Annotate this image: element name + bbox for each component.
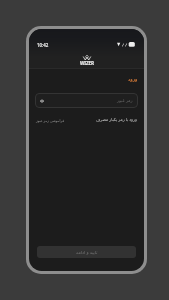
- other: Show password: [40, 99, 44, 103]
- staticText: تایید و ادامه: [76, 249, 98, 255]
- button[interactable]: تایید و ادامه: [37, 246, 136, 258]
- button[interactable]: ورود با رمز یکبار مصرف: [96, 117, 137, 123]
- staticText: 10:42: [37, 42, 49, 48]
- staticText: رمز عبور: [117, 98, 133, 104]
- button[interactable]: ورود: [128, 76, 138, 82]
- staticText: WIZER: [80, 60, 94, 66]
- button[interactable]: فراموشی رمز عبور: [36, 118, 65, 123]
- button[interactable]: Show password: [35, 93, 138, 108]
